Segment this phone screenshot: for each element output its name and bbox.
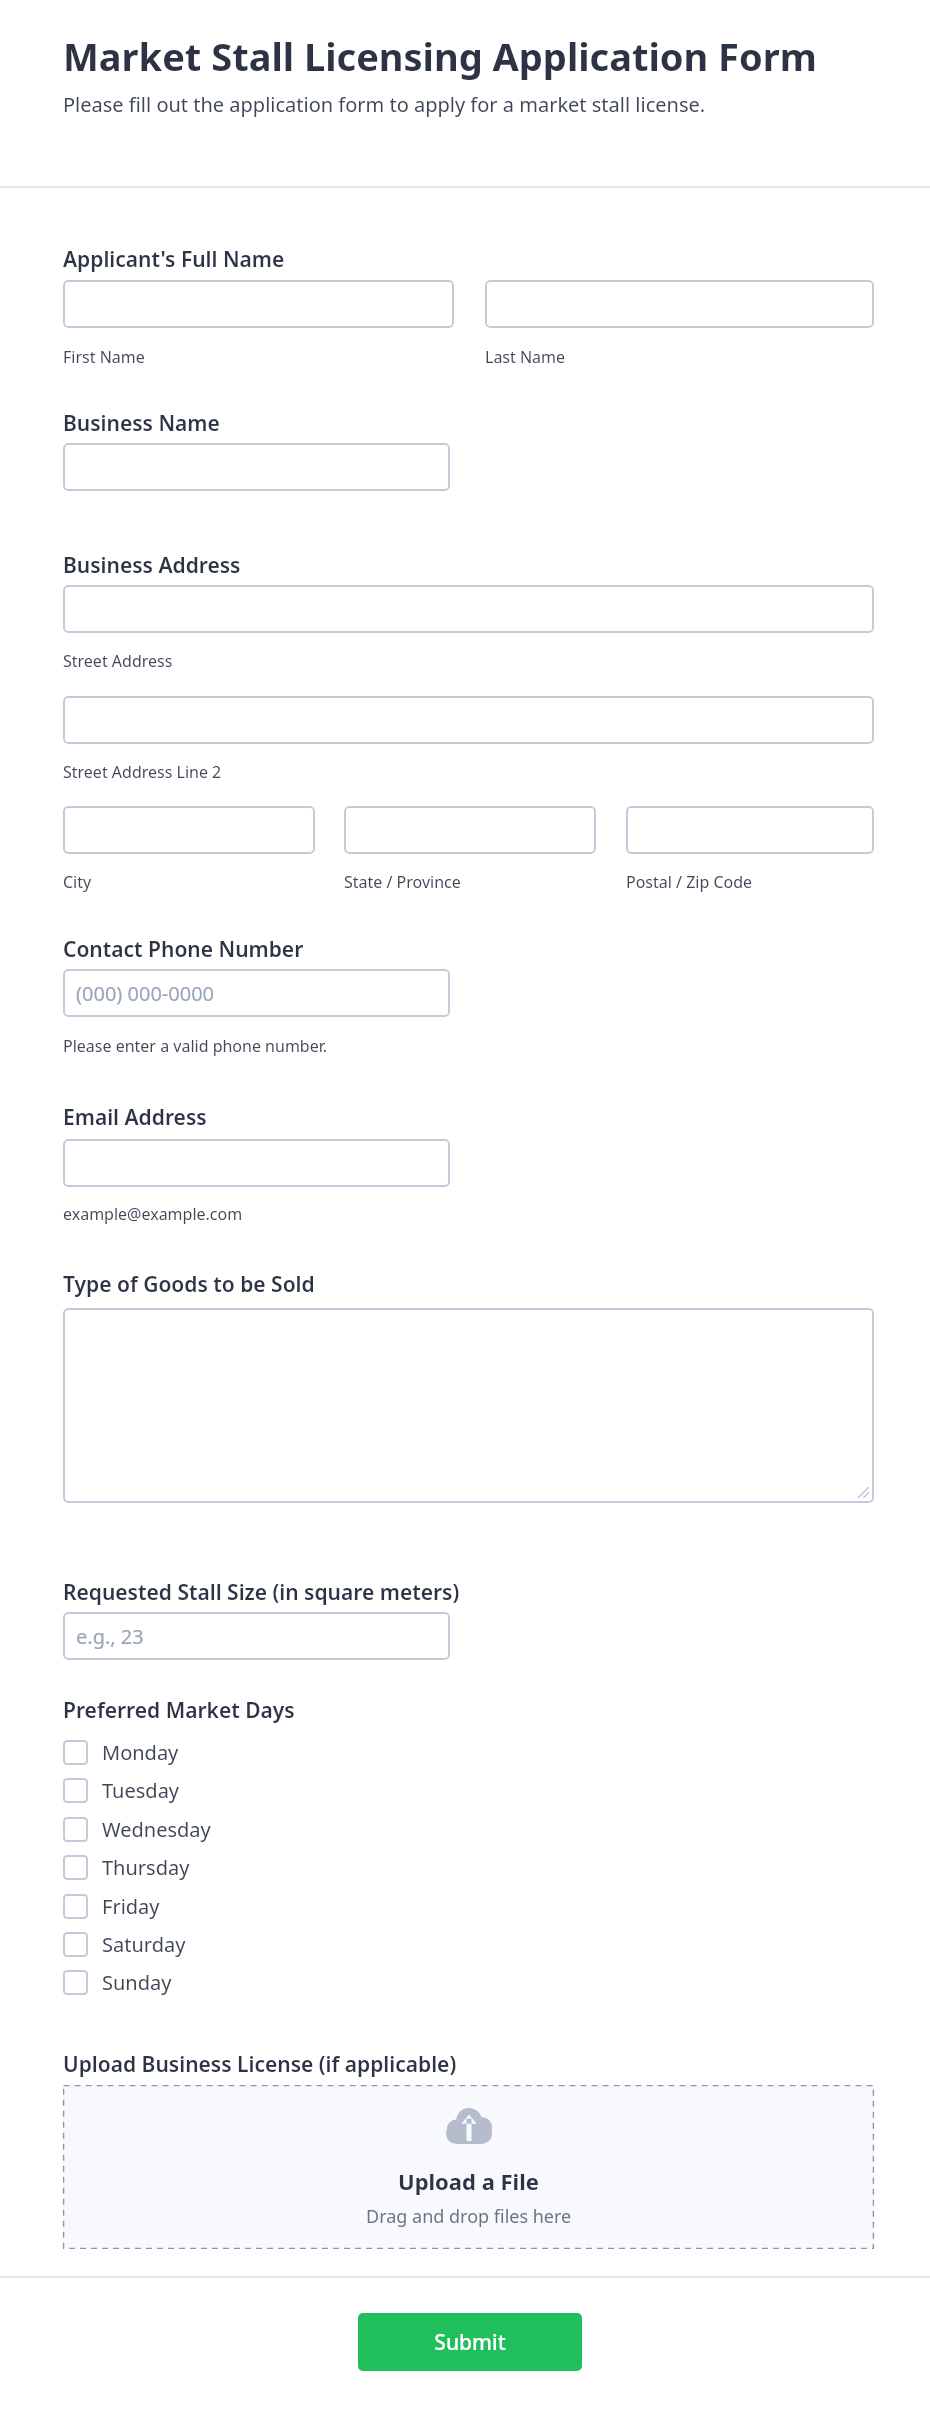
staticText: Tuesday — [102, 1777, 180, 1804]
staticText: City — [63, 871, 92, 893]
staticText: Monday — [102, 1739, 179, 1766]
staticText: Preferred Market Days — [63, 1696, 295, 1725]
button[interactable] — [344, 806, 596, 854]
button[interactable] — [63, 1308, 874, 1503]
button[interactable]: e.g., 23 — [63, 1612, 450, 1660]
staticText: Wednesday — [102, 1816, 211, 1843]
staticText: Drag and drop files here — [366, 2204, 572, 2229]
staticText: Requested Stall Size (in square meters) — [63, 1578, 460, 1607]
staticText: Friday — [102, 1893, 160, 1920]
staticText: Postal / Zip Code — [626, 871, 753, 893]
button[interactable] — [626, 806, 874, 854]
staticText: (000) 000-0000 — [76, 980, 215, 1007]
button[interactable]: Wednesday — [63, 1813, 343, 1845]
staticText: e.g., 23 — [76, 1623, 144, 1650]
button[interactable] — [63, 280, 454, 328]
button[interactable] — [485, 280, 874, 328]
staticText: Street Address — [63, 650, 173, 672]
button[interactable] — [63, 696, 874, 744]
button[interactable]: (000) 000-0000 — [63, 969, 450, 1017]
staticText: Contact Phone Number — [63, 935, 304, 964]
button[interactable] — [63, 443, 450, 491]
staticText: First Name — [63, 346, 145, 368]
button[interactable]: Monday — [63, 1736, 343, 1768]
staticText: Business Name — [63, 409, 220, 438]
staticText: Business Address — [63, 551, 241, 580]
staticText: Street Address Line 2 — [63, 761, 222, 783]
button[interactable] — [63, 585, 874, 633]
staticText: Upload a File — [398, 2166, 539, 2196]
button[interactable]: Sunday — [63, 1966, 343, 1998]
staticText: Please fill out the application form to … — [63, 91, 706, 118]
staticText: Market Stall Licensing Application Form — [63, 30, 817, 82]
staticText: Saturday — [102, 1931, 186, 1958]
button[interactable]: Saturday — [63, 1928, 343, 1960]
staticText: Email Address — [63, 1103, 207, 1132]
button[interactable]: Thursday — [63, 1851, 343, 1883]
button[interactable]: Submit — [358, 2313, 582, 2371]
staticText: Upload Business License (if applicable) — [63, 2050, 457, 2079]
button[interactable]: Upload a File — [63, 2085, 874, 2249]
staticText: Submit — [434, 2328, 506, 2357]
staticText: Applicant's Full Name — [63, 245, 285, 274]
button[interactable]: Tuesday — [63, 1774, 343, 1806]
button[interactable]: Friday — [63, 1890, 343, 1922]
staticText: State / Province — [344, 871, 461, 893]
staticText: Last Name — [485, 346, 566, 368]
button[interactable] — [63, 806, 315, 854]
staticText: example@example.com — [63, 1203, 243, 1225]
staticText: Thursday — [102, 1854, 190, 1881]
button[interactable] — [63, 1139, 450, 1187]
staticText: Please enter a valid phone number. — [63, 1035, 328, 1057]
staticText: Sunday — [102, 1969, 172, 1996]
staticText: Type of Goods to be Sold — [63, 1270, 315, 1299]
